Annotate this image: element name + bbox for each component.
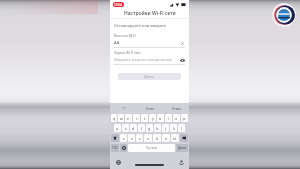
button[interactable]: c (136, 134, 143, 142)
staticText: k (173, 126, 175, 131)
staticText: Далее (178, 146, 187, 150)
button[interactable]: u (157, 114, 164, 122)
staticText: f (141, 126, 143, 131)
staticText: h (156, 126, 159, 131)
button[interactable]: ?123 (111, 144, 119, 152)
button[interactable]: d (130, 124, 137, 132)
staticText: w (120, 116, 123, 121)
staticText: ?123 (112, 146, 118, 150)
staticText: Пароль Wi-Fi сети (114, 51, 141, 55)
staticText: "i" (122, 106, 126, 111)
button[interactable]: Голосовой ввод (173, 157, 189, 167)
staticText: n (165, 136, 168, 141)
button[interactable]: b (153, 134, 161, 142)
button[interactable]: i (165, 114, 172, 122)
button[interactable]: v (144, 134, 152, 142)
staticText: d (132, 126, 135, 131)
staticText: y (152, 116, 154, 121)
button[interactable]: Русский (128, 144, 175, 152)
button[interactable]: Настройки клавиатуры (110, 157, 126, 167)
staticText: s (125, 126, 127, 131)
staticText: Настройки Wi-Fi сети (124, 10, 176, 17)
staticText: t (144, 116, 146, 121)
staticText: Далее (144, 74, 155, 79)
button[interactable]: h (154, 124, 161, 132)
button[interactable]: Если (137, 103, 163, 113)
staticText: c (139, 136, 141, 141)
staticText: AA (114, 40, 120, 46)
button[interactable]: Пароль Wi-Fi сети (110, 48, 189, 65)
other: Очистить (180, 41, 185, 46)
button[interactable]: m (171, 134, 179, 142)
staticText: p (183, 116, 186, 121)
button[interactable]: a (114, 124, 121, 132)
button[interactable]: l (178, 124, 185, 132)
staticText: z (123, 136, 125, 141)
staticText: a (116, 126, 119, 131)
staticText: Если (146, 106, 154, 111)
staticText: l (181, 126, 182, 131)
button[interactable]: r (133, 114, 140, 122)
staticText: g (148, 126, 151, 131)
button[interactable]: Shift (111, 134, 119, 142)
button[interactable]: s (122, 124, 129, 132)
staticText: b (156, 136, 159, 141)
staticText: q (113, 116, 116, 121)
staticText: Отсканируйте или введите название сети W… (114, 23, 185, 28)
staticText: o (175, 116, 178, 121)
button[interactable]: j (162, 124, 169, 132)
button[interactable]: t (141, 114, 148, 122)
staticText: r (136, 116, 138, 121)
button[interactable]: w (118, 114, 124, 122)
button[interactable]: n (162, 134, 170, 142)
button[interactable]: Имя сети Wi-Fi (110, 31, 189, 48)
staticText: x (131, 136, 133, 141)
button[interactable]: x (128, 134, 135, 142)
staticText: Русский (146, 146, 157, 150)
button[interactable]: p (181, 114, 188, 122)
staticText: Этим (172, 106, 181, 111)
button[interactable]: y (149, 114, 156, 122)
staticText: j (165, 126, 166, 131)
button[interactable]: o (173, 114, 180, 122)
staticText: m (173, 136, 177, 141)
staticText: e (127, 116, 130, 121)
button[interactable]: f (138, 124, 145, 132)
button[interactable]: g (146, 124, 153, 132)
staticText: Имя сети Wi-Fi (114, 34, 136, 38)
staticText: u (159, 116, 162, 121)
staticText: 18:04 (114, 3, 123, 7)
button[interactable]: "i" (110, 103, 137, 113)
button[interactable]: q (111, 114, 117, 122)
button[interactable]: Далее (118, 73, 181, 80)
button[interactable]: e (125, 114, 132, 122)
button[interactable]: Эмодзи (120, 144, 127, 152)
button[interactable]: Этим (163, 103, 189, 113)
button[interactable]: Удалить (180, 134, 188, 142)
button[interactable]: z (120, 134, 127, 142)
button[interactable]: Далее (176, 144, 188, 152)
staticText: i (168, 116, 169, 121)
button[interactable]: k (170, 124, 177, 132)
staticText: v (147, 136, 149, 141)
staticText: Введите пароль соединения (114, 57, 172, 63)
other: Показать пароль (180, 58, 185, 63)
